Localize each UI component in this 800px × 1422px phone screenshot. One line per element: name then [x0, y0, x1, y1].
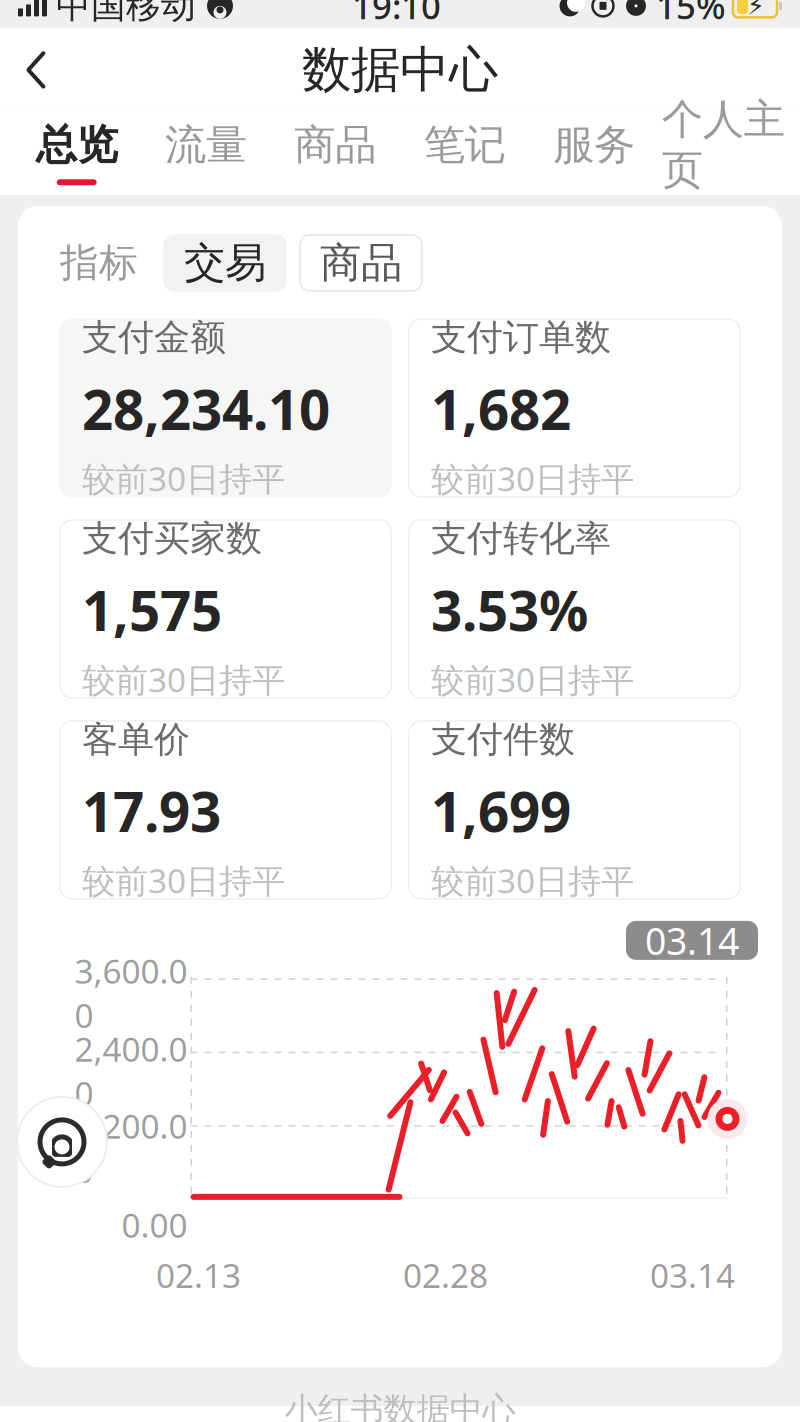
- button[interactable]: Back: [0, 28, 72, 112]
- staticText: 3,600.00: [74, 949, 187, 1037]
- staticText: 0.00: [121, 1203, 187, 1247]
- staticText: 服务: [553, 119, 635, 170]
- staticText: 客单价: [82, 717, 190, 762]
- staticText: 支付转化率: [431, 516, 611, 561]
- button[interactable]: 商品: [300, 235, 422, 291]
- staticText: 个人主页: [662, 94, 785, 196]
- staticText: 1,699: [431, 775, 571, 847]
- button[interactable]: 服务: [529, 112, 659, 195]
- button[interactable]: 商品: [271, 112, 400, 195]
- staticText: 19:10: [352, 0, 441, 29]
- staticText: 数据中心: [302, 40, 498, 100]
- staticText: ⚡︎: [747, 0, 765, 20]
- staticText: 指标: [60, 239, 138, 287]
- staticText: 较前30日持平: [431, 858, 634, 902]
- staticText: 支付金额: [82, 315, 226, 360]
- button[interactable]: 流量: [141, 112, 271, 195]
- button[interactable]: 交易: [164, 235, 286, 291]
- staticText: 支付买家数: [82, 516, 262, 561]
- staticText: 2,400.00: [74, 1027, 187, 1115]
- staticText: 支付订单数: [431, 315, 611, 360]
- button[interactable]: 支付订单数: [409, 319, 740, 497]
- button[interactable]: 笔记: [400, 112, 529, 195]
- staticText: 3.53%: [431, 574, 588, 646]
- staticText: 流量: [165, 119, 247, 170]
- button[interactable]: 支付买家数: [60, 520, 391, 698]
- button[interactable]: 客单价: [60, 721, 391, 899]
- staticText: 1,682: [431, 373, 571, 445]
- staticText: 较前30日持平: [82, 657, 285, 701]
- staticText: 商品: [294, 119, 376, 170]
- staticText: 较前30日持平: [431, 456, 634, 500]
- staticText: 总览: [36, 119, 118, 170]
- button[interactable]: 支付转化率: [409, 520, 740, 698]
- button[interactable]: 支付件数: [409, 721, 740, 899]
- button[interactable]: 支付金额: [60, 319, 391, 497]
- button[interactable]: Customer service chat: [17, 1097, 107, 1187]
- staticText: 1,200.00: [74, 1104, 187, 1192]
- staticText: 商品: [320, 237, 402, 288]
- staticText: 17.93: [82, 775, 221, 847]
- button[interactable]: 总览: [12, 112, 141, 195]
- staticText: 1,575: [82, 574, 222, 646]
- button[interactable]: 个人主页: [659, 112, 788, 195]
- staticText: 03.14: [645, 916, 739, 965]
- staticText: 较前30日持平: [82, 858, 285, 902]
- staticText: 02.28: [403, 1253, 488, 1297]
- staticText: 中国移动: [56, 0, 196, 27]
- staticText: 交易: [184, 237, 266, 288]
- staticText: 15%: [656, 0, 726, 29]
- staticText: 28,234.10: [82, 373, 330, 445]
- staticText: 较前30日持平: [82, 456, 285, 500]
- staticText: 02.13: [156, 1253, 241, 1297]
- staticText: 笔记: [424, 119, 506, 170]
- staticText: 支付件数: [431, 717, 575, 762]
- staticText: 较前30日持平: [431, 657, 634, 701]
- staticText: 03.14: [650, 1253, 735, 1297]
- staticText: 小红书数据中心: [284, 1389, 515, 1422]
